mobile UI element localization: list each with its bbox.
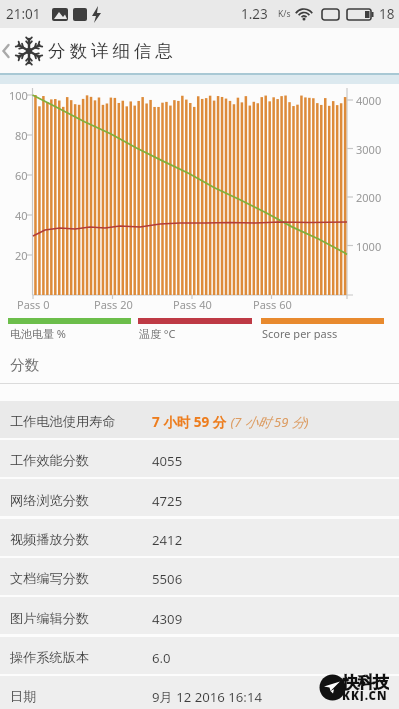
staticText: Pass 60 [253, 297, 292, 311]
button[interactable] [16, 38, 42, 64]
staticText: 40 [15, 208, 28, 223]
staticText: 日期 [10, 688, 37, 705]
staticText: 9月 12 2016 16:14 [152, 688, 262, 706]
staticText: 2412 [152, 531, 183, 549]
staticText: Pass 40 [173, 297, 212, 311]
staticText: 1.23 [241, 5, 268, 23]
staticText: 电池电量 % [10, 326, 67, 340]
button[interactable] [0, 440, 399, 477]
staticText: 4725 [152, 492, 183, 510]
staticText: 分数 [10, 356, 39, 374]
staticText: 工作电池使用寿命 [10, 413, 116, 430]
staticText: KKJ.CN [342, 688, 388, 701]
staticText: (7 小时 59 分) [227, 413, 309, 431]
staticText: 7 小时 59 分 [152, 413, 227, 431]
staticText: 视频播放分数 [10, 531, 90, 548]
staticText: 100 [9, 88, 28, 103]
staticText: 图片编辑分数 [10, 610, 90, 627]
button[interactable] [0, 40, 14, 62]
staticText: 工作效能分数 [10, 452, 90, 469]
staticText: 6.0 [152, 649, 171, 667]
staticText: 21:01 [6, 5, 41, 23]
button[interactable] [0, 519, 399, 556]
button[interactable] [0, 637, 399, 674]
button[interactable] [0, 479, 399, 516]
staticText: Pass 20 [94, 297, 133, 311]
staticText: 2000 [356, 190, 382, 205]
staticText: 4055 [152, 452, 183, 470]
staticText: 4309 [152, 610, 183, 628]
staticText: 操作系统版本 [10, 649, 90, 666]
staticText: 3000 [356, 142, 382, 157]
staticText: 文档编写分数 [10, 570, 90, 587]
button[interactable] [0, 558, 399, 595]
staticText: 18 [379, 5, 395, 23]
button[interactable] [0, 401, 399, 438]
staticText: Pass 0 [17, 297, 50, 311]
staticText: 网络浏览分数 [10, 492, 90, 509]
button[interactable] [0, 676, 399, 709]
staticText: 60 [15, 168, 28, 183]
staticText: 温度 °C [139, 326, 176, 340]
staticText: 4000 [356, 93, 382, 108]
staticText: 分数详细信息 [46, 40, 175, 62]
staticText: 80 [15, 128, 28, 143]
button[interactable] [0, 597, 399, 634]
staticText: 5506 [152, 570, 183, 588]
staticText: 1000 [356, 239, 382, 254]
staticText: Score per pass [262, 326, 338, 340]
staticText: 20 [15, 248, 28, 263]
staticText: K/s [278, 8, 291, 20]
staticText: 快科技 [342, 672, 389, 692]
